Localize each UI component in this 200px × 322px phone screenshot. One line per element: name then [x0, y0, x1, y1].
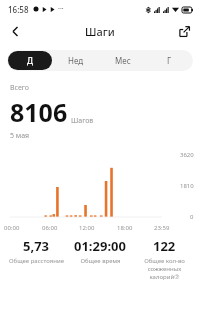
staticText: Шаги	[85, 24, 115, 39]
button[interactable]: Д	[8, 51, 52, 70]
button[interactable]: 5,73	[4, 237, 68, 265]
staticText: Общее расстояние	[9, 257, 64, 265]
staticText: 0	[190, 213, 194, 221]
staticText: ···	[58, 4, 64, 14]
staticText: Мес	[115, 55, 131, 66]
staticText: Д	[27, 55, 33, 66]
staticText: 23:59	[154, 224, 170, 232]
staticText: 1810	[180, 182, 194, 190]
staticText: 12:00	[79, 224, 95, 232]
staticText: Всего	[10, 83, 29, 93]
button[interactable]: 01:29:00	[68, 237, 132, 265]
button[interactable]: Г	[147, 51, 192, 70]
button[interactable]: Share	[173, 20, 195, 42]
staticText: 16:58	[8, 4, 29, 15]
staticText: 3620	[180, 151, 194, 159]
staticText: Шагов	[71, 116, 94, 126]
staticText: 18:00	[117, 224, 133, 232]
button[interactable]: Нед	[54, 51, 98, 70]
staticText: 06:00	[42, 224, 58, 232]
staticText: Г	[167, 55, 172, 66]
staticText: Общее время	[80, 257, 121, 265]
staticText: 122	[153, 237, 176, 255]
staticText: 01:29:00	[74, 237, 126, 255]
staticText: 5 мая	[10, 131, 30, 141]
button[interactable]: Мес	[100, 51, 145, 70]
staticText: Общее кол-во сожженных калорий⑦	[144, 257, 185, 281]
staticText: 5,73	[23, 237, 50, 255]
staticText: 00:00	[4, 224, 20, 232]
staticText: 8106	[10, 95, 68, 129]
button[interactable]: 122	[132, 237, 196, 281]
button[interactable]: Back	[4, 20, 26, 42]
staticText: Нед	[68, 55, 84, 66]
